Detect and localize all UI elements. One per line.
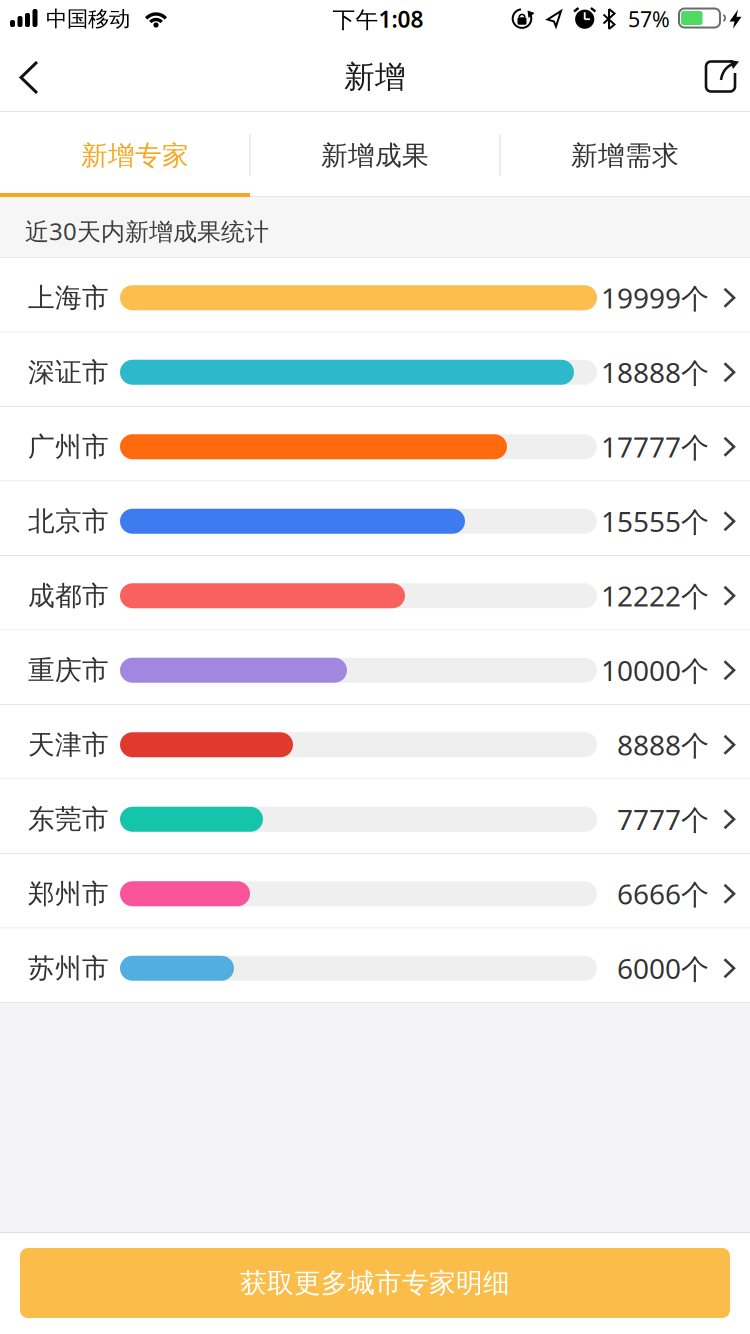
staticText: 上海市 [28, 281, 109, 314]
staticText: 新增专家 [81, 139, 189, 172]
staticText: 近30天内新增成果统计 [25, 215, 269, 247]
button[interactable]: 苏州市 [0, 928, 750, 1003]
button[interactable]: 新增专家 [0, 112, 250, 193]
staticText: 广州市 [28, 430, 109, 463]
staticText: 天津市 [28, 728, 109, 761]
staticText: 6666个 [617, 875, 709, 912]
staticText: 下午1:08 [332, 4, 423, 34]
button[interactable]: 分享 [685, 40, 750, 111]
staticText: 57% [628, 5, 670, 33]
staticText: 苏州市 [28, 952, 109, 985]
button[interactable]: 上海市 [0, 258, 750, 332]
staticText: 10000个 [601, 652, 709, 689]
staticText: 新增成果 [321, 139, 429, 172]
staticText: 新增需求 [571, 139, 679, 172]
button[interactable]: 东莞市 [0, 779, 750, 854]
staticText: 7777个 [617, 801, 709, 838]
button[interactable]: 重庆市 [0, 630, 750, 705]
staticText: 获取更多城市专家明细 [240, 1267, 510, 1299]
button[interactable]: 北京市 [0, 481, 750, 556]
staticText: 东莞市 [28, 803, 109, 836]
staticText: 6000个 [617, 950, 709, 987]
staticText: 8888个 [617, 726, 709, 763]
staticText: 中国移动 [46, 6, 130, 32]
staticText: 郑州市 [28, 877, 109, 910]
staticText: 19999个 [601, 279, 709, 316]
staticText: 深证市 [28, 356, 109, 389]
button[interactable]: 郑州市 [0, 854, 750, 928]
button[interactable]: 返回 [0, 40, 70, 111]
staticText: 18888个 [601, 354, 709, 391]
button[interactable]: 新增成果 [250, 112, 500, 193]
staticText: 12222个 [601, 577, 709, 614]
staticText: 重庆市 [28, 654, 109, 687]
staticText: 成都市 [28, 579, 109, 612]
staticText: 北京市 [28, 505, 109, 538]
button[interactable]: 天津市 [0, 705, 750, 779]
staticText: 15555个 [601, 503, 709, 540]
button[interactable]: 获取更多城市专家明细 [20, 1248, 730, 1318]
button[interactable]: 广州市 [0, 407, 750, 481]
staticText: 新增 [344, 58, 406, 96]
button[interactable]: 成都市 [0, 556, 750, 630]
button[interactable]: 深证市 [0, 332, 750, 407]
staticText: 17777个 [601, 428, 709, 465]
button[interactable]: 新增需求 [500, 112, 750, 193]
